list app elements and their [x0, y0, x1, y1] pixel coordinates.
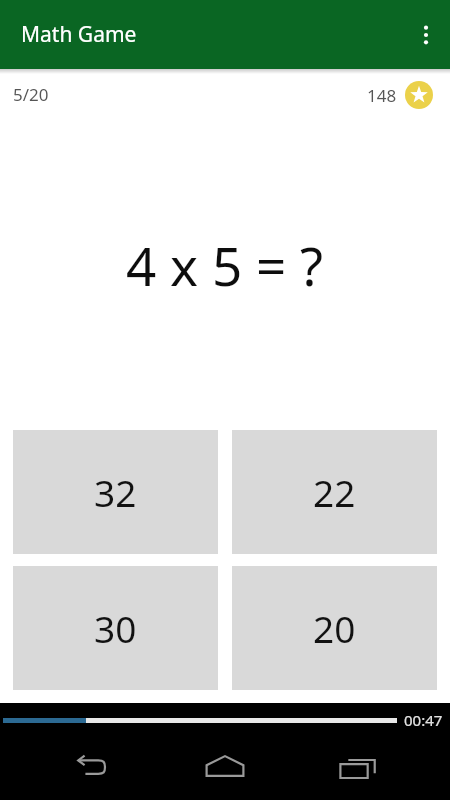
button[interactable]: Back — [53, 738, 133, 794]
button[interactable]: 20 — [232, 566, 437, 690]
button[interactable]: Recent apps — [318, 738, 398, 794]
staticText: 00:47 — [404, 710, 443, 730]
staticText: 4 x 5 = ? — [126, 229, 324, 301]
staticText: 32 — [94, 467, 137, 517]
button[interactable]: More options — [402, 0, 450, 69]
staticText: 148 — [367, 84, 397, 107]
staticText: 30 — [94, 603, 137, 653]
button[interactable]: 22 — [232, 430, 437, 554]
staticText: Math Game — [21, 20, 137, 49]
staticText: 5/20 — [13, 83, 49, 106]
staticText: 20 — [313, 603, 356, 653]
button[interactable]: 32 — [13, 430, 218, 554]
staticText: 22 — [313, 467, 356, 517]
button[interactable]: 30 — [13, 566, 218, 690]
button[interactable]: Home — [185, 738, 265, 794]
